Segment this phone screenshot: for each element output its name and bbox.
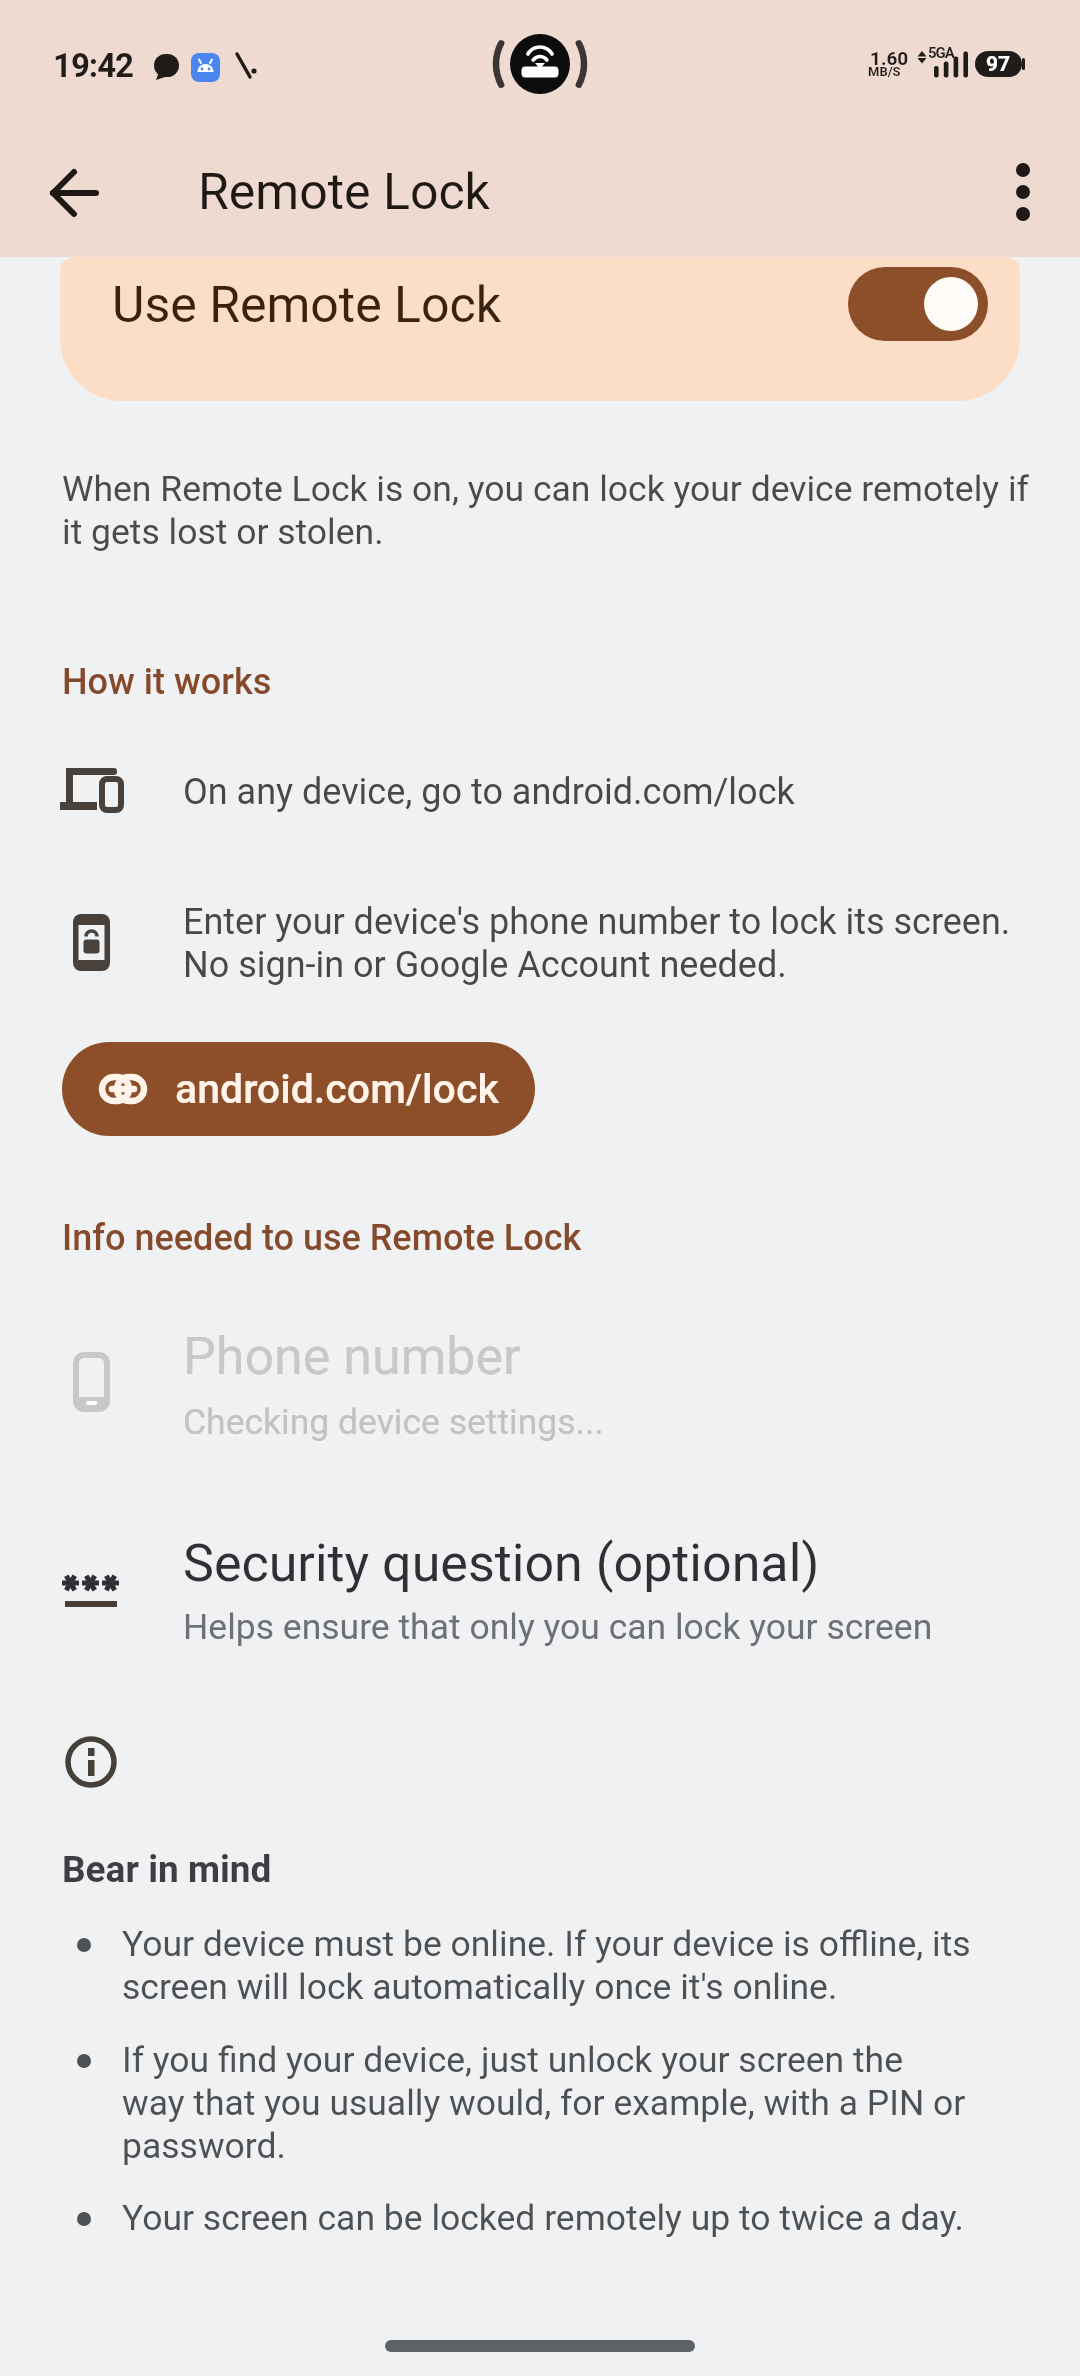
staticText: Phone number xyxy=(183,1326,521,1387)
staticText: Checking device settings... xyxy=(183,1401,604,1443)
staticText: Use Remote Lock xyxy=(112,276,502,335)
staticText: On any device, go to android.com/lock xyxy=(183,771,795,813)
staticText: Enter your device's phone number to lock… xyxy=(183,901,1011,986)
button[interactable] xyxy=(999,168,1047,216)
button[interactable]: Use Remote Lock xyxy=(60,257,1020,401)
staticText: Info needed to use Remote Lock xyxy=(62,1217,582,1259)
button[interactable] xyxy=(0,1520,1080,1660)
staticText: Security question (optional) xyxy=(183,1533,820,1594)
staticText: 5GA xyxy=(928,44,954,62)
staticText: Your device must be online. If your devi… xyxy=(122,1923,971,2008)
button[interactable] xyxy=(0,1310,1080,1460)
staticText: Your screen can be locked remotely up to… xyxy=(122,2197,964,2239)
staticText: android.com/lock xyxy=(175,1065,499,1113)
staticText: 1.60 xyxy=(870,47,909,69)
staticText: Remote Lock xyxy=(198,163,490,222)
staticText: How it works xyxy=(62,661,272,703)
staticText: Helps ensure that only you can lock your… xyxy=(183,1606,933,1648)
staticText: 19:42 xyxy=(53,46,134,85)
button[interactable] xyxy=(50,169,98,217)
staticText: Bear in mind xyxy=(62,1848,272,1891)
staticText: MB/S xyxy=(868,64,901,79)
button[interactable]: android.com/lock xyxy=(62,1042,535,1136)
staticText: If you find your device, just unlock you… xyxy=(122,2039,966,2167)
staticText: 97 xyxy=(986,52,1011,77)
staticText: When Remote Lock is on, you can lock you… xyxy=(62,468,1029,553)
